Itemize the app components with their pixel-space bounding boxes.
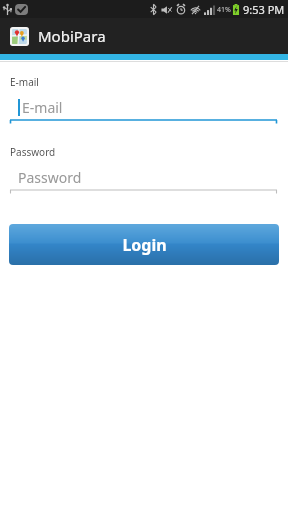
staticText: E-mail <box>10 75 39 89</box>
button[interactable]: E-mail <box>10 94 277 125</box>
staticText: 41% <box>217 5 231 15</box>
staticText: E-mail <box>22 98 63 117</box>
staticText: MobiPara <box>38 26 106 46</box>
button[interactable]: MobiPara <box>0 18 288 54</box>
staticText: 9:53 PM <box>243 2 285 17</box>
button[interactable]: Password <box>10 164 277 195</box>
staticText: Password <box>18 168 82 187</box>
button[interactable]: Login <box>9 224 279 265</box>
staticText: Login <box>122 234 167 256</box>
staticText: Password <box>10 145 56 159</box>
